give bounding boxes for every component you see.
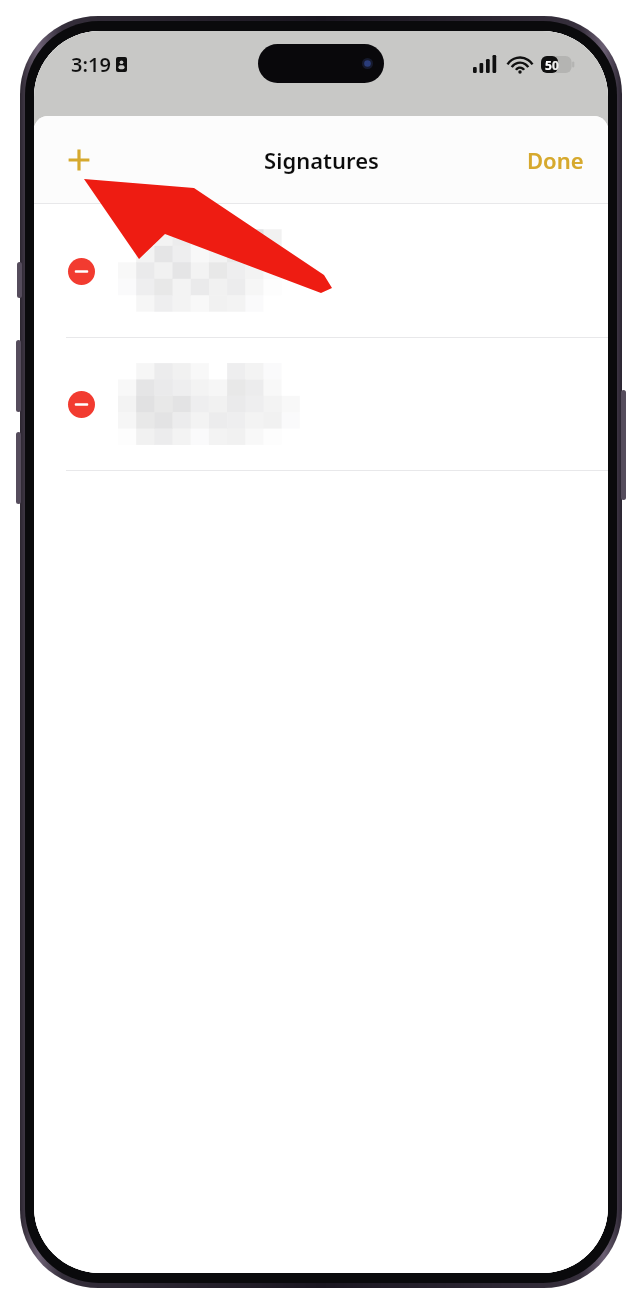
staticText: Done (527, 145, 584, 175)
button[interactable]: Done (519, 137, 592, 183)
button[interactable]: Delete signature (34, 338, 608, 470)
button[interactable]: Delete signature (34, 204, 608, 337)
staticText: 0 (552, 57, 559, 73)
button[interactable]: Delete signature (66, 389, 96, 419)
staticText: Signatures (264, 145, 379, 175)
button[interactable]: Add signature (55, 136, 103, 184)
button[interactable]: Delete signature (66, 256, 96, 286)
staticText: 5 (545, 57, 552, 73)
staticText: 3:19 (71, 51, 111, 78)
